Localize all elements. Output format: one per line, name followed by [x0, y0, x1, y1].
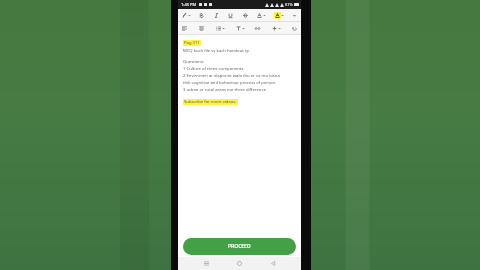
staticText: Questions:	[183, 59, 205, 65]
button[interactable]: PROCEED	[183, 238, 296, 255]
button[interactable]: List	[214, 23, 226, 33]
staticText: 2 Envirnmen ar disporint wala thu er os …	[183, 73, 280, 79]
button[interactable]: Highlight color	[273, 10, 285, 20]
button[interactable]: Align left	[180, 23, 189, 33]
button[interactable]: Format brush	[180, 10, 192, 20]
button[interactable]: Undo	[290, 23, 299, 33]
staticText: 3 urban or rural areas me three differen…	[183, 87, 267, 93]
staticText: Subscribe for more videos.	[184, 99, 237, 105]
staticText: MCQ kuch file sy kuch handout sy .	[183, 48, 252, 54]
button[interactable]: More options	[290, 10, 299, 20]
staticText: thik cognitive and behaviour process of …	[183, 80, 277, 86]
button[interactable]: Home	[234, 258, 245, 269]
button[interactable]: Bold	[197, 10, 206, 20]
button[interactable]: Text size	[234, 23, 246, 33]
button[interactable]: Insert	[270, 23, 282, 33]
button[interactable]: Back	[268, 258, 279, 269]
staticText: 61%	[285, 2, 293, 7]
staticText: 1:45 PM	[181, 2, 197, 7]
staticText: PROCEED	[228, 243, 251, 250]
button[interactable]: Strikethrough	[241, 10, 250, 20]
staticText: 1 Culture of three components.	[183, 66, 245, 72]
button[interactable]: Recent apps	[201, 258, 212, 269]
button[interactable]: Italic	[212, 10, 221, 20]
button[interactable]: Text color	[255, 10, 267, 20]
staticText: Pag 311	[184, 40, 200, 46]
button[interactable]: Insert link	[253, 23, 262, 33]
button[interactable]: Align center	[197, 23, 206, 33]
button[interactable]: Underline	[226, 10, 235, 20]
